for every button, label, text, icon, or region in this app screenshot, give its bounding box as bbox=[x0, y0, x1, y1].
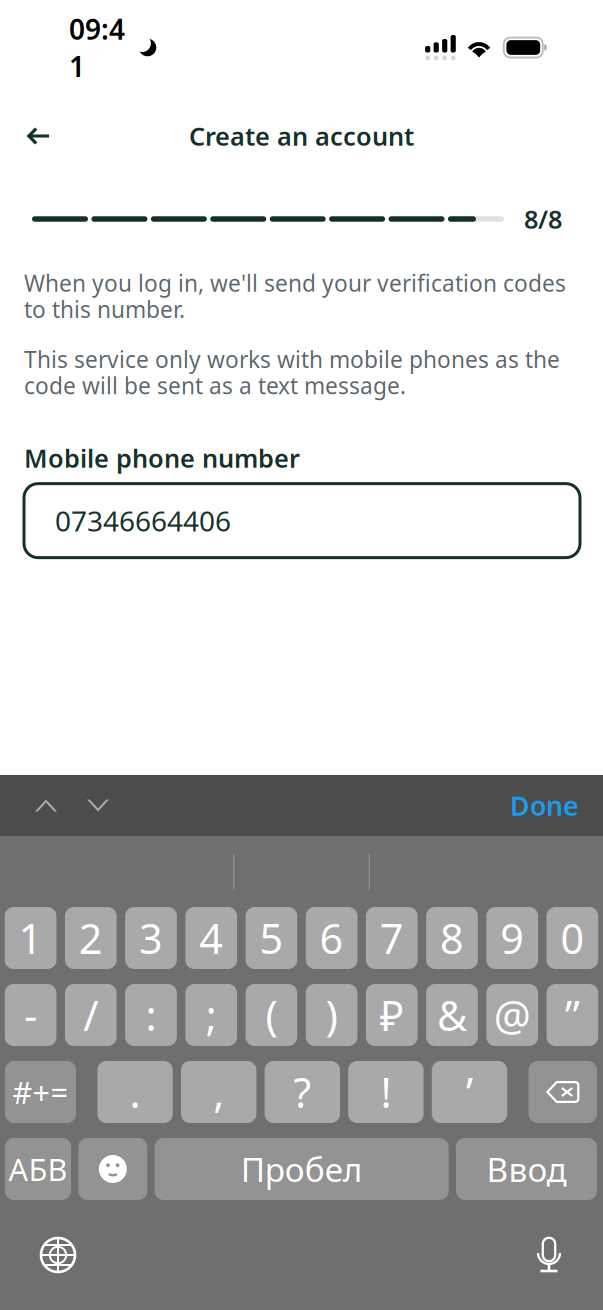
staticText: Done bbox=[510, 788, 579, 823]
staticText: Ввод bbox=[486, 1147, 566, 1191]
staticText: 9 bbox=[500, 911, 524, 965]
staticText: 7 bbox=[380, 911, 404, 965]
staticText: ! bbox=[380, 1065, 391, 1119]
staticText: Mobile phone number bbox=[24, 441, 300, 475]
staticText: 3 bbox=[139, 911, 163, 965]
staticText: 8/8 bbox=[524, 202, 562, 236]
button[interactable]: ? bbox=[265, 1061, 340, 1123]
staticText: & bbox=[437, 988, 467, 1042]
button[interactable]: , bbox=[181, 1061, 256, 1123]
button[interactable]: Done bbox=[510, 775, 579, 835]
staticText: When you log in, we'll send your verific… bbox=[24, 268, 566, 324]
button[interactable]: ’ bbox=[432, 1061, 507, 1123]
button[interactable]: 6 bbox=[306, 907, 357, 969]
button[interactable]: ₽ bbox=[366, 984, 418, 1046]
button[interactable]: Пробел bbox=[155, 1138, 449, 1200]
staticText: #+= bbox=[12, 1072, 68, 1112]
button[interactable]: - bbox=[5, 984, 56, 1046]
staticText: . bbox=[130, 1065, 141, 1119]
staticText: ( bbox=[265, 988, 277, 1042]
staticText: ’ bbox=[466, 1065, 473, 1119]
staticText: 0 bbox=[560, 911, 584, 965]
button[interactable]: 5 bbox=[246, 907, 297, 969]
button[interactable]: 3 bbox=[125, 907, 177, 969]
button[interactable] bbox=[529, 1061, 597, 1123]
button[interactable]: Previous field bbox=[20, 775, 72, 835]
button[interactable]: 1 bbox=[5, 907, 56, 969]
staticText: , bbox=[213, 1065, 224, 1119]
staticText: - bbox=[24, 988, 37, 1042]
staticText: ; bbox=[206, 988, 217, 1042]
button[interactable]: Dictate bbox=[522, 1228, 576, 1282]
button[interactable]: Back bbox=[13, 112, 63, 160]
staticText: Пробел bbox=[241, 1147, 363, 1191]
button[interactable] bbox=[78, 1138, 147, 1200]
staticText: ” bbox=[565, 988, 580, 1042]
button[interactable]: & bbox=[426, 984, 478, 1046]
staticText: ? bbox=[293, 1065, 311, 1119]
button[interactable]: ” bbox=[546, 984, 598, 1046]
staticText: : bbox=[145, 988, 156, 1042]
staticText: 09:41 bbox=[69, 10, 125, 85]
button[interactable]: / bbox=[65, 984, 117, 1046]
staticText: / bbox=[83, 988, 98, 1042]
staticText: ₽ bbox=[380, 988, 404, 1042]
button[interactable]: 9 bbox=[486, 907, 538, 969]
button[interactable]: 4 bbox=[185, 907, 237, 969]
button[interactable]: Ввод bbox=[456, 1138, 597, 1200]
staticText: 6 bbox=[320, 911, 344, 965]
button[interactable]: ) bbox=[306, 984, 357, 1046]
staticText: This service only works with mobile phon… bbox=[24, 344, 560, 400]
staticText: 2 bbox=[79, 911, 103, 965]
staticText: 1 bbox=[19, 911, 43, 965]
button[interactable]: ( bbox=[246, 984, 297, 1046]
button[interactable]: 7 bbox=[366, 907, 418, 969]
staticText: 4 bbox=[199, 911, 223, 965]
button[interactable]: ; bbox=[185, 984, 237, 1046]
staticText: 07346664406 bbox=[55, 502, 231, 539]
staticText: @ bbox=[494, 988, 531, 1042]
button[interactable]: Change keyboard bbox=[31, 1228, 85, 1282]
staticText: АБВ bbox=[8, 1149, 67, 1189]
button[interactable]: ! bbox=[348, 1061, 424, 1123]
staticText: Create an account bbox=[189, 119, 414, 153]
button[interactable]: #+= bbox=[5, 1061, 76, 1123]
button[interactable]: 0 bbox=[546, 907, 598, 969]
button[interactable]: . bbox=[97, 1061, 173, 1123]
button[interactable]: АБВ bbox=[5, 1138, 71, 1200]
button[interactable]: @ bbox=[486, 984, 538, 1046]
staticText: 5 bbox=[259, 911, 283, 965]
staticText: ) bbox=[326, 988, 338, 1042]
staticText: 8 bbox=[440, 911, 464, 965]
button[interactable]: Next field bbox=[72, 775, 124, 835]
button[interactable]: 2 bbox=[65, 907, 117, 969]
button[interactable]: : bbox=[125, 984, 177, 1046]
button[interactable]: 8 bbox=[426, 907, 478, 969]
